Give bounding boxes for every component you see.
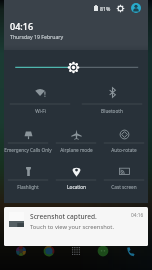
staticText: 04:16 <box>10 20 34 32</box>
staticText: Location <box>67 184 86 190</box>
button[interactable]: Brightness <box>4 50 148 79</box>
staticText: Screenshot captured. <box>30 212 97 221</box>
staticText: Thursday 19 February <box>10 33 64 40</box>
button[interactable]: Wi-Fi <box>4 79 76 119</box>
button[interactable]: Emergency Calls Only <box>4 119 52 157</box>
staticText: 81% <box>100 5 111 12</box>
button[interactable]: Flashlight <box>4 157 52 195</box>
button[interactable]: Location <box>52 157 100 195</box>
staticText: Flashlight <box>17 184 39 190</box>
staticText: Touch to view your screenshot. <box>30 223 114 231</box>
staticText: Airplane mode <box>60 147 93 153</box>
staticText: Auto-rotate <box>111 147 137 153</box>
staticText: 04:16 <box>131 212 144 219</box>
staticText: Emergency Calls Only <box>4 147 52 153</box>
staticText: Bluetooth <box>101 108 123 114</box>
button[interactable]: Bluetooth <box>76 79 148 119</box>
staticText: Wi-Fi <box>35 108 46 114</box>
staticText: Cast screen <box>111 184 137 190</box>
button[interactable]: User profile <box>131 3 141 13</box>
button[interactable]: Airplane mode <box>52 119 100 157</box>
button[interactable]: Screenshot captured. <box>4 207 148 246</box>
button[interactable]: Cast screen <box>100 157 148 195</box>
button[interactable]: Auto-rotate <box>100 119 148 157</box>
button[interactable]: Settings <box>116 4 125 13</box>
